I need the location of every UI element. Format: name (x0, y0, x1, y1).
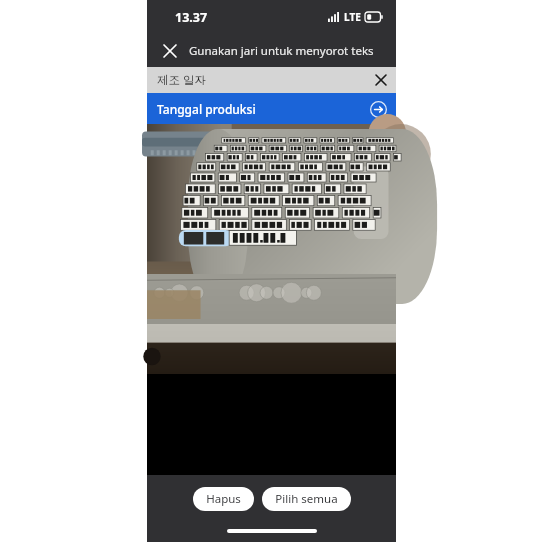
staticText: Gunakan jari untuk menyorot teks (189, 43, 374, 59)
staticText: Tanggal produksi (157, 101, 256, 117)
staticText: 13.37 (175, 9, 208, 26)
staticText: Hapus (206, 491, 241, 507)
button[interactable]: Hapus (193, 487, 254, 511)
button[interactable]: Tanggal produksi (147, 93, 396, 124)
button[interactable]: 제조 일자 (147, 67, 396, 93)
button[interactable]: Terjemahkan (368, 99, 388, 119)
staticText: Pilih semua (275, 491, 338, 507)
staticText: 제조 일자 (157, 72, 206, 88)
button[interactable]: Pilih semua (262, 487, 351, 511)
button[interactable]: Hapus teks (370, 69, 392, 91)
staticText: LTE (344, 10, 361, 24)
button[interactable] (147, 124, 396, 374)
button[interactable]: Tutup (155, 36, 185, 66)
